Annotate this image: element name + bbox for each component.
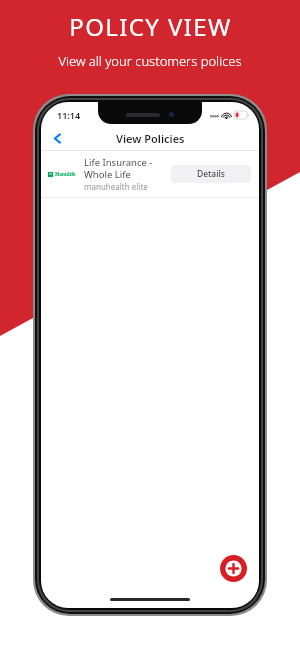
button[interactable]: Add policy (220, 555, 247, 582)
staticText: POLICY VIEW (69, 10, 232, 43)
button[interactable]: Back (46, 127, 68, 149)
button[interactable]: Manulife (41, 151, 259, 197)
staticText: Manulife (55, 171, 76, 177)
staticText: View all your customers polices (58, 52, 242, 70)
staticText: manuhealth elite (84, 181, 148, 192)
staticText: View Policies (116, 131, 185, 146)
staticText: Life Insurance - Whole Life (84, 156, 153, 181)
staticText: 11:14 (57, 109, 81, 121)
button[interactable]: Details (171, 165, 251, 183)
staticText: Details (197, 168, 225, 180)
